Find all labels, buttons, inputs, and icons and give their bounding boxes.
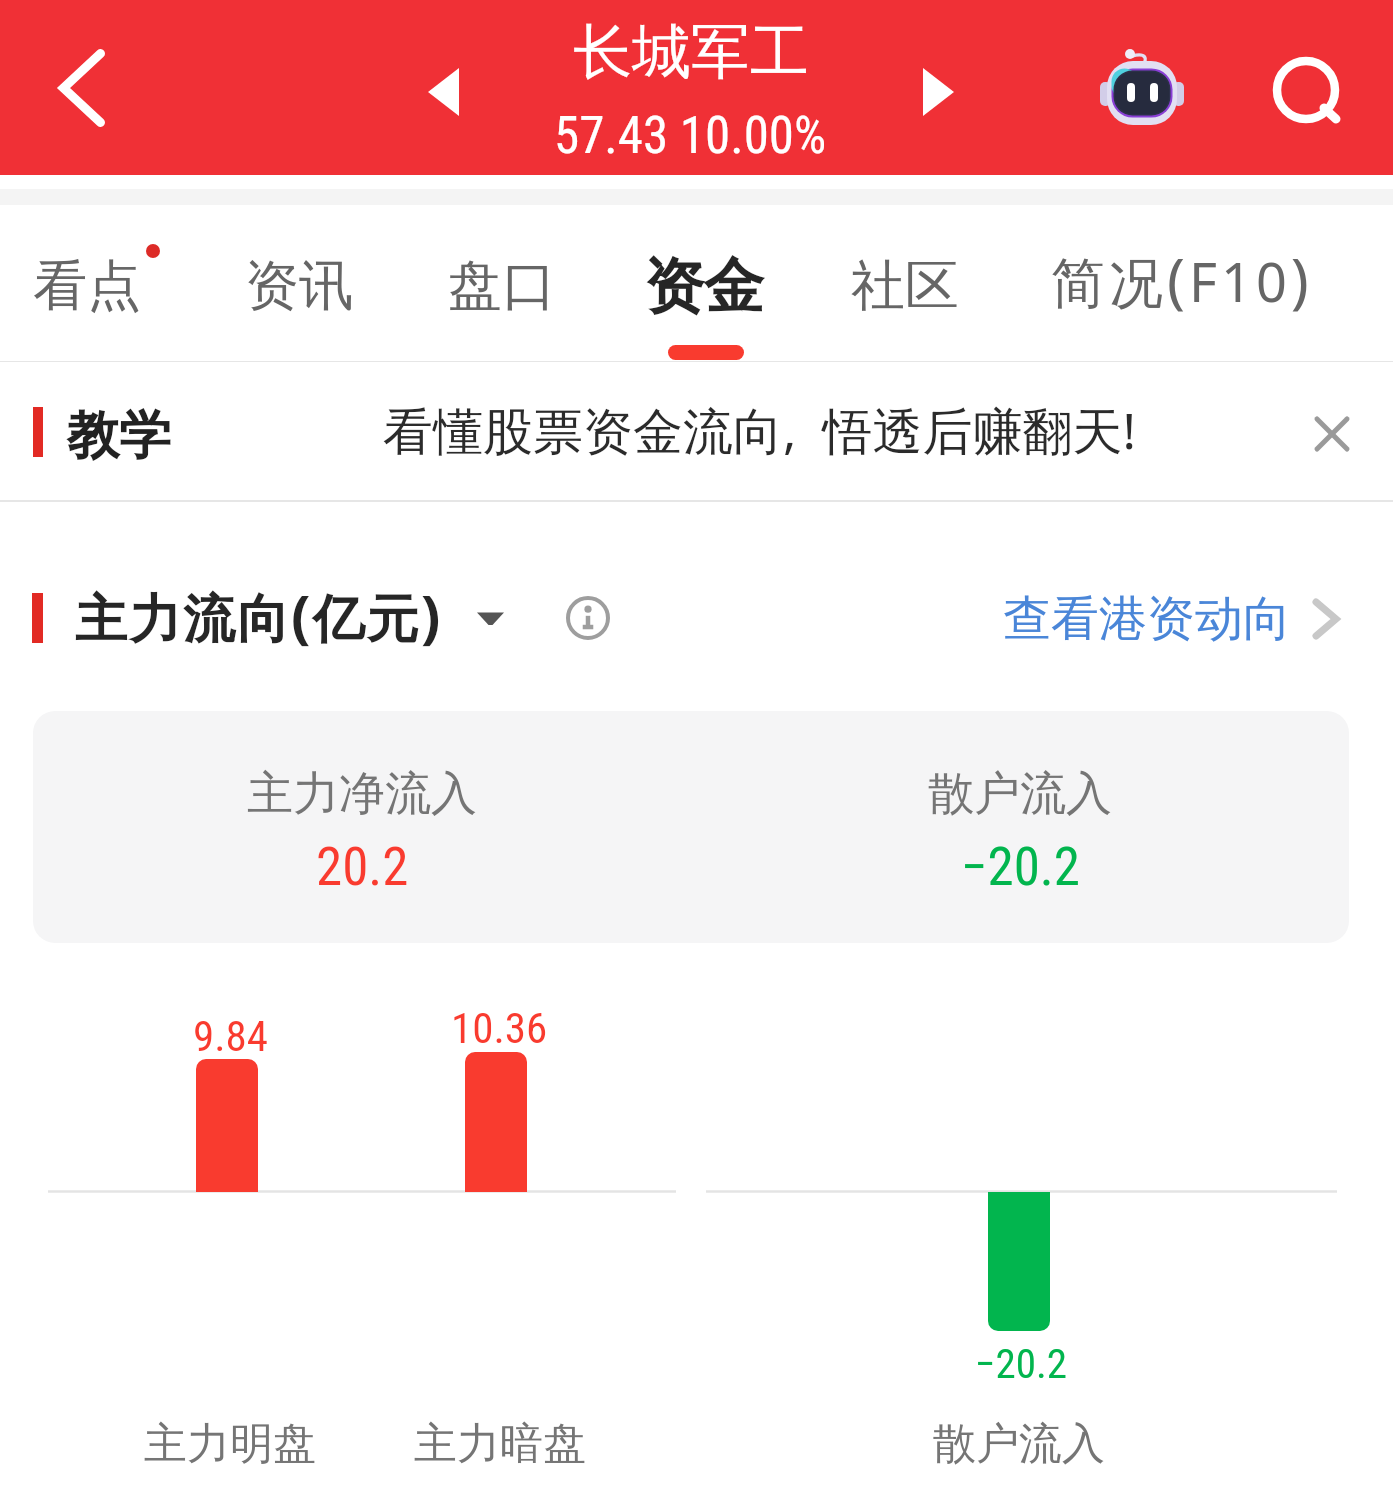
staticText: −20.2 <box>975 1340 1068 1388</box>
button[interactable]: Info <box>556 586 620 650</box>
button[interactable]: 主力流向(亿元) <box>75 575 504 654</box>
button[interactable]: 散户流入 <box>691 711 1349 943</box>
button[interactable]: Previous stock <box>398 47 488 137</box>
button[interactable]: AI assistant <box>1080 29 1204 149</box>
button[interactable]: 查看港资动向 <box>1003 589 1351 649</box>
staticText: 简况(F10) <box>1051 238 1313 320</box>
button[interactable]: 资讯 <box>223 205 375 362</box>
button[interactable]: 看点 <box>11 205 163 362</box>
staticText: 盘口 <box>448 252 556 320</box>
button[interactable]: 社区 <box>829 205 981 362</box>
staticText: 主力净流入 <box>247 765 477 823</box>
button[interactable]: Next stock <box>893 47 983 137</box>
staticText: 教学 <box>67 403 171 469</box>
button[interactable]: Search <box>1270 52 1370 152</box>
staticText: 看点 <box>33 252 141 320</box>
button[interactable] <box>0 362 1270 500</box>
staticText: 长城军工 <box>573 15 809 89</box>
staticText: 社区 <box>851 252 959 320</box>
staticText: 主力暗盘 <box>414 1417 586 1471</box>
staticText: 主力流向(亿元) <box>75 575 443 654</box>
staticText: 资金 <box>644 249 764 325</box>
staticText: 9.84 <box>193 1011 269 1061</box>
staticText: 资讯 <box>245 252 353 320</box>
button[interactable]: Close <box>1286 388 1378 480</box>
staticText: −20.2 <box>961 836 1080 898</box>
staticText: 10.36 <box>451 1003 548 1053</box>
staticText: 看懂股票资金流向,悟透后赚翻天! <box>383 396 1146 464</box>
button[interactable]: 主力净流入 <box>33 711 691 943</box>
staticText: 散户流入 <box>928 765 1112 823</box>
button[interactable]: 盘口 <box>426 205 578 362</box>
staticText: 主力明盘 <box>144 1417 316 1471</box>
staticText: 散户流入 <box>933 1417 1105 1471</box>
staticText: 20.2 <box>316 836 409 898</box>
button[interactable]: Back <box>32 40 132 136</box>
staticText: 57.43 10.00% <box>554 106 827 166</box>
button[interactable]: 资金 <box>622 205 786 362</box>
staticText: 查看港资动向 <box>1003 589 1291 649</box>
button[interactable]: 简况(F10) <box>1029 205 1335 362</box>
